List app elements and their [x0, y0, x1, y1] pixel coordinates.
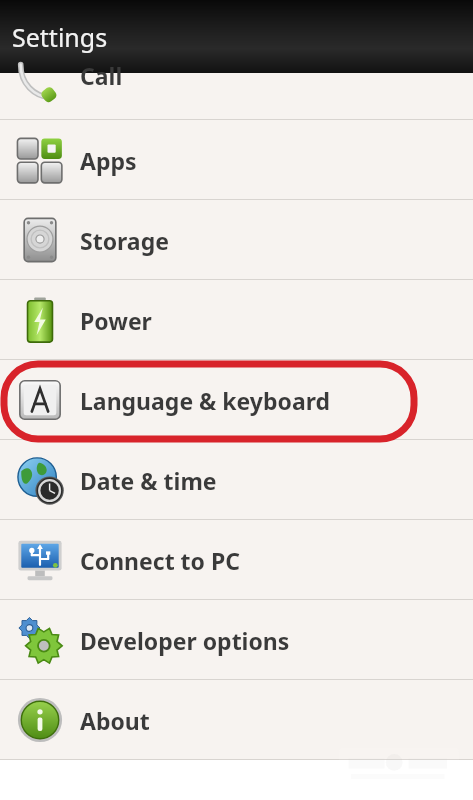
button[interactable]: Power: [0, 280, 473, 360]
staticText: Apps: [80, 145, 137, 176]
button[interactable]: Call: [0, 73, 473, 120]
button[interactable]: Connect to PC: [0, 520, 473, 600]
staticText: Developer options: [80, 625, 290, 656]
staticText: Language & keyboard: [80, 385, 331, 416]
button[interactable]: Date & time: [0, 440, 473, 520]
staticText: Power: [80, 305, 152, 336]
button[interactable]: Storage: [0, 200, 473, 280]
staticText: Storage: [80, 225, 169, 256]
button[interactable]: About: [0, 680, 473, 760]
staticText: Call: [80, 60, 123, 91]
button[interactable]: Developer options: [0, 600, 473, 680]
button[interactable]: Apps: [0, 120, 473, 200]
staticText: About: [80, 705, 150, 736]
staticText: Settings: [12, 20, 108, 54]
button[interactable]: Language & keyboard: [0, 360, 473, 440]
staticText: Connect to PC: [80, 545, 240, 576]
staticText: Date & time: [80, 465, 217, 496]
